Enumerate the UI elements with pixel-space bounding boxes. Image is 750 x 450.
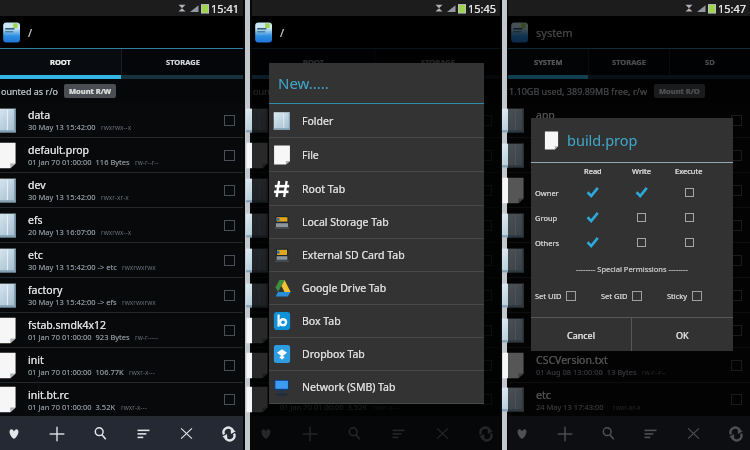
- button[interactable]: app: [508, 103, 750, 138]
- button[interactable]: Search: [85, 417, 115, 450]
- button[interactable]: Add: [550, 417, 580, 450]
- button[interactable]: Root Tab: [269, 172, 484, 206]
- staticText: csc: [536, 283, 552, 297]
- button[interactable]: Network (SMB) Tab: [269, 371, 484, 404]
- staticText: rwxr-xr-x: [101, 193, 129, 202]
- staticText: 1.10GB used, 389.89MB free, r/w: [509, 85, 648, 97]
- button[interactable]: data: [252, 103, 500, 138]
- button[interactable]: Close: [678, 417, 708, 450]
- button[interactable]: Favorites: [507, 417, 537, 450]
- staticText: Sticky: [667, 291, 688, 301]
- button[interactable]: Google Drive Tab: [269, 272, 484, 305]
- button[interactable]: Close: [427, 417, 457, 450]
- button[interactable]: init.bt.rc: [0, 383, 243, 417]
- button[interactable]: data: [0, 103, 243, 138]
- button[interactable]: Sort: [635, 417, 665, 450]
- button[interactable]: Refresh: [721, 417, 750, 450]
- button[interactable]: CSCVersion.txt: [508, 348, 750, 383]
- button[interactable]: init: [252, 348, 500, 383]
- staticText: ROOT: [50, 57, 71, 67]
- staticText: rwxr-xr-x: [609, 158, 637, 167]
- staticText: 01 Jan 70 01:00:00 3.52K: [28, 402, 116, 412]
- button[interactable]: etc: [508, 383, 750, 417]
- staticText: 20 May 13 16:07:00: [28, 227, 96, 237]
- button[interactable]: init: [0, 348, 243, 383]
- button[interactable]: ROOT: [0, 49, 121, 75]
- staticText: Owner: [535, 188, 559, 198]
- button[interactable]: cameradata: [508, 208, 750, 243]
- button[interactable]: factory: [252, 278, 500, 313]
- button[interactable]: efs: [252, 208, 500, 243]
- staticText: STORAGE: [166, 57, 200, 67]
- button[interactable]: Sticky: [667, 291, 733, 301]
- staticText: default.prop: [280, 143, 342, 157]
- staticText: Set UID: [535, 291, 562, 301]
- button[interactable]: etc: [508, 313, 750, 348]
- button[interactable]: STORAGE: [376, 49, 500, 75]
- button[interactable]: External SD Card Tab: [269, 239, 484, 272]
- button[interactable]: factory: [0, 278, 243, 313]
- staticText: rwxr-x---: [121, 403, 147, 412]
- staticText: 01 Jan 70 01:00:00 923 Bytes: [28, 332, 130, 342]
- button[interactable]: Close: [171, 417, 201, 450]
- button[interactable]: default.prop: [252, 138, 500, 173]
- button[interactable]: Set GID: [601, 291, 667, 301]
- button[interactable]: File: [269, 138, 484, 172]
- button[interactable]: csc: [508, 278, 750, 313]
- button[interactable]: Favorites: [0, 417, 29, 450]
- staticText: Local Storage Tab: [302, 215, 389, 229]
- button[interactable]: Refresh: [471, 417, 501, 450]
- button[interactable]: etc: [0, 243, 243, 278]
- button[interactable]: container: [508, 243, 750, 278]
- staticText: STORAGE: [421, 57, 455, 67]
- staticText: Group: [535, 213, 558, 223]
- staticText: build.prop: [536, 178, 588, 192]
- button[interactable]: SYSTEM: [508, 49, 588, 75]
- button[interactable]: build.prop: [508, 173, 750, 208]
- button[interactable]: Folder: [269, 104, 484, 138]
- button[interactable]: Search: [339, 417, 369, 450]
- button[interactable]: SD: [670, 49, 750, 75]
- button[interactable]: STORAGE: [589, 49, 669, 75]
- button[interactable]: Sort: [383, 417, 413, 450]
- staticText: Mount R/W: [321, 86, 363, 96]
- button[interactable]: STORAGE: [122, 49, 243, 75]
- staticText: data: [280, 108, 303, 122]
- button[interactable]: Mount R/W: [69, 84, 111, 98]
- button[interactable]: Cancel: [531, 318, 631, 351]
- button[interactable]: dev: [252, 173, 500, 208]
- button[interactable]: etc: [252, 243, 500, 278]
- button[interactable]: Refresh: [214, 417, 244, 450]
- staticText: Write: [632, 166, 651, 176]
- button[interactable]: Dropbox Tab: [269, 338, 484, 371]
- staticText: 30 May 13 15:42:00 -> etc: [280, 262, 369, 272]
- staticText: dev: [280, 178, 298, 192]
- button[interactable]: Add: [295, 417, 325, 450]
- staticText: factory: [28, 283, 63, 297]
- button[interactable]: efs: [0, 208, 243, 243]
- button[interactable]: fstab.smdk4x12: [252, 313, 500, 348]
- button[interactable]: Mount R/W: [321, 84, 363, 98]
- button[interactable]: default.prop: [0, 138, 243, 173]
- button[interactable]: Box Tab: [269, 305, 484, 338]
- button[interactable]: Search: [593, 417, 623, 450]
- button[interactable]: OK: [632, 318, 733, 351]
- button[interactable]: Local Storage Tab: [269, 206, 484, 239]
- button[interactable]: dev: [0, 173, 243, 208]
- staticText: CSCVersion.txt: [536, 353, 608, 367]
- staticText: ounted as r/o: [253, 85, 310, 97]
- button[interactable]: bin: [508, 138, 750, 173]
- staticText: 30 May 13 15:42:00: [28, 122, 96, 132]
- button[interactable]: fstab.smdk4x12: [0, 313, 243, 348]
- button[interactable]: Mount R/O: [659, 84, 700, 98]
- button[interactable]: Add: [42, 417, 72, 450]
- button[interactable]: Favorites: [251, 417, 281, 450]
- button[interactable]: Sort: [128, 417, 158, 450]
- button[interactable]: init.bt.rc: [252, 383, 500, 417]
- button[interactable]: ROOT: [252, 49, 375, 75]
- button[interactable]: Set UID: [535, 291, 601, 301]
- staticText: STORAGE: [612, 57, 646, 67]
- staticText: 30 May 13 15:42:00: [536, 157, 604, 167]
